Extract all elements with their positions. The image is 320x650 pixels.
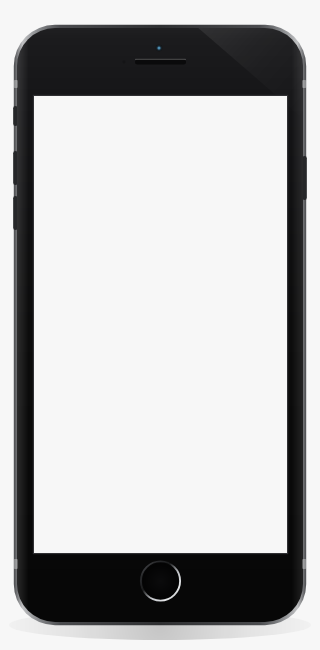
button[interactable]: Phone device mockup: [0, 0, 320, 650]
